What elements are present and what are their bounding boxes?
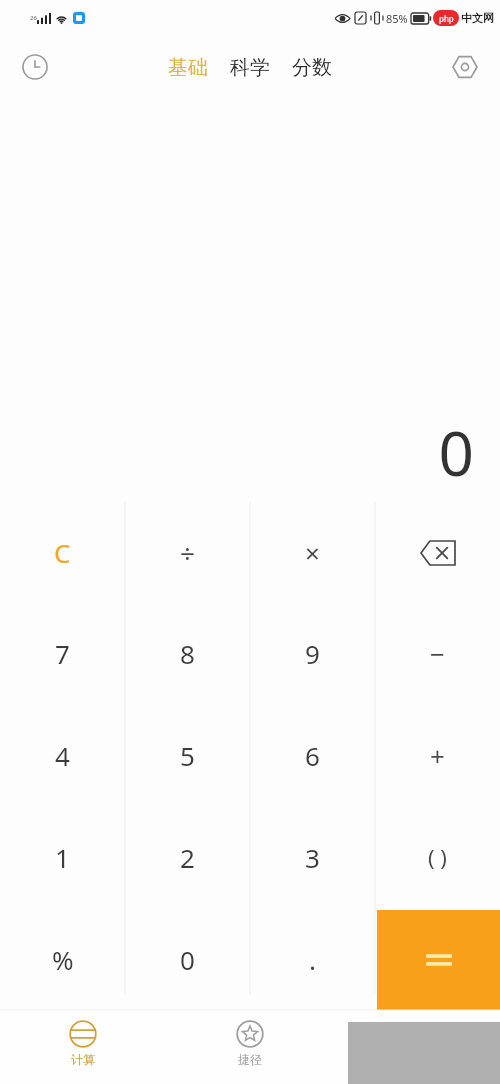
button[interactable]: % bbox=[0, 908, 125, 1010]
staticText: ( ) bbox=[428, 842, 447, 872]
button[interactable]: 基础 bbox=[164, 51, 212, 84]
staticText: 85% bbox=[386, 11, 408, 26]
button[interactable]: 分数 bbox=[288, 51, 336, 84]
staticText: 1 bbox=[55, 840, 70, 875]
staticText: 26 bbox=[30, 14, 37, 22]
button[interactable]: − bbox=[375, 603, 500, 704]
staticText: 8 bbox=[180, 636, 195, 671]
staticText: 9 bbox=[305, 636, 320, 671]
staticText: 7 bbox=[55, 636, 70, 671]
staticText: ÷ bbox=[180, 535, 195, 570]
button[interactable]: 4 bbox=[0, 704, 125, 806]
staticText: + bbox=[430, 738, 445, 773]
staticText: 分数 bbox=[292, 55, 332, 80]
staticText: 2 bbox=[180, 840, 195, 875]
button[interactable]: × bbox=[250, 502, 375, 603]
button[interactable]: 0 bbox=[125, 908, 250, 1010]
button[interactable]: 计算 bbox=[0, 1010, 166, 1084]
staticText: 计算 bbox=[71, 1052, 95, 1067]
staticText: 0 bbox=[438, 410, 474, 494]
staticText: 中文网 bbox=[461, 11, 494, 25]
staticText: php bbox=[439, 13, 454, 24]
staticText: × bbox=[305, 535, 320, 570]
staticText: 0 bbox=[180, 942, 195, 977]
staticText: 6 bbox=[305, 738, 320, 773]
button[interactable]: . bbox=[250, 908, 375, 1010]
button[interactable]: 2 bbox=[125, 806, 250, 908]
button[interactable]: 捷径 bbox=[166, 1010, 333, 1084]
staticText: 基础 bbox=[168, 55, 208, 80]
button[interactable]: Backspace bbox=[375, 502, 500, 603]
button[interactable]: ÷ bbox=[125, 502, 250, 603]
button[interactable]: C bbox=[0, 502, 125, 603]
button[interactable]: 7 bbox=[0, 603, 125, 704]
staticText: − bbox=[430, 636, 445, 671]
button[interactable]: 6 bbox=[250, 704, 375, 806]
staticText: C bbox=[54, 535, 71, 570]
staticText: 科学 bbox=[230, 55, 270, 80]
staticText: 4 bbox=[55, 738, 70, 773]
staticText: 3 bbox=[305, 840, 320, 875]
staticText: % bbox=[52, 942, 74, 977]
button[interactable]: 5 bbox=[125, 704, 250, 806]
button[interactable]: 3 bbox=[250, 806, 375, 908]
button[interactable]: 8 bbox=[125, 603, 250, 704]
button[interactable]: 1 bbox=[0, 806, 125, 908]
button[interactable]: 科学 bbox=[226, 51, 274, 84]
button[interactable]: + bbox=[375, 704, 500, 806]
staticText: . bbox=[309, 942, 316, 977]
button[interactable]: History bbox=[14, 46, 56, 88]
button[interactable]: 9 bbox=[250, 603, 375, 704]
button[interactable]: Settings bbox=[444, 46, 486, 88]
button[interactable]: ( ) bbox=[375, 806, 500, 908]
staticText: 5 bbox=[180, 738, 195, 773]
staticText: 捷径 bbox=[238, 1052, 262, 1067]
button[interactable]: Equals bbox=[377, 910, 500, 1010]
